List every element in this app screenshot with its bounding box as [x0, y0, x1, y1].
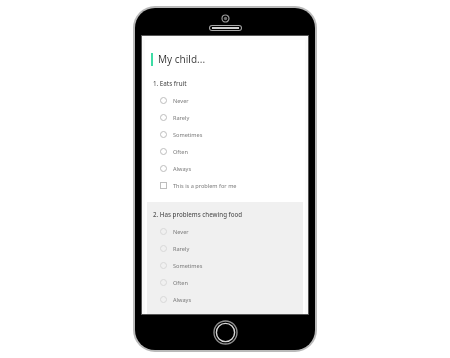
button[interactable]: Sometimes: [153, 126, 297, 143]
staticText: 2. Has problems chewing food: [153, 210, 243, 218]
button[interactable]: My child...: [145, 52, 305, 66]
staticText: Always: [173, 296, 192, 304]
button[interactable]: Never: [153, 92, 297, 109]
staticText: Always: [173, 165, 192, 173]
button[interactable]: Always: [153, 160, 297, 177]
button[interactable]: Sometimes: [153, 257, 297, 274]
staticText: Often: [173, 279, 188, 287]
button[interactable]: This is a problem for me: [153, 177, 297, 194]
button[interactable]: Rarely: [153, 240, 297, 257]
staticText: Never: [173, 228, 189, 236]
staticText: My child...: [158, 52, 206, 66]
staticText: Sometimes: [173, 131, 203, 139]
button[interactable]: Often: [153, 143, 297, 160]
staticText: 1. Eats fruit: [153, 79, 187, 87]
staticText: Rarely: [173, 114, 190, 122]
button[interactable]: Rarely: [153, 109, 297, 126]
button[interactable]: Home: [213, 320, 238, 345]
button[interactable]: Always: [153, 291, 297, 308]
button[interactable]: Often: [153, 274, 297, 291]
staticText: Rarely: [173, 245, 190, 253]
staticText: Often: [173, 148, 188, 156]
staticText: Sometimes: [173, 262, 203, 270]
button[interactable]: Never: [153, 223, 297, 240]
staticText: This is a problem for me: [173, 182, 237, 190]
staticText: Never: [173, 97, 189, 105]
